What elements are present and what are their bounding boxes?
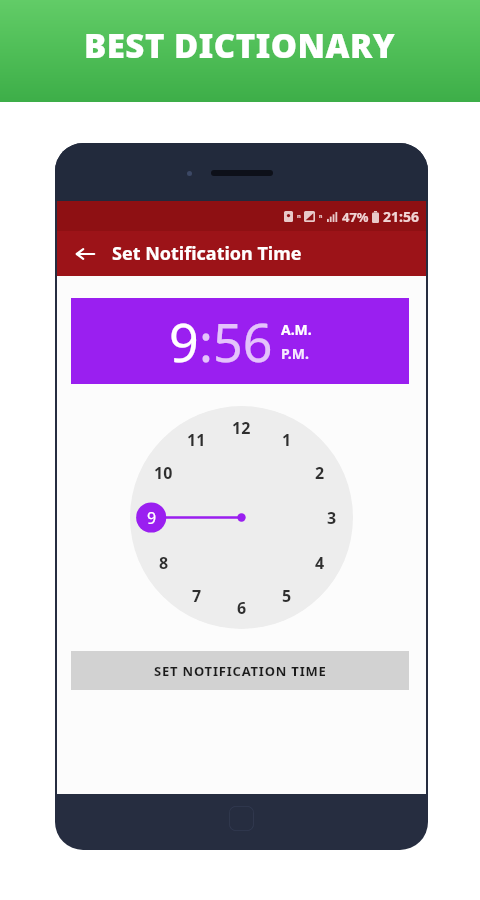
staticText: P.M. xyxy=(281,344,309,363)
staticText: 9 xyxy=(147,507,157,529)
staticText: 10 xyxy=(154,462,173,484)
staticText: :56 xyxy=(199,306,273,377)
staticText: 2 xyxy=(315,462,325,484)
staticText: 5 xyxy=(282,585,292,607)
button[interactable]: Clock face, 9 o'clock xyxy=(130,406,353,629)
staticText: 21:56 xyxy=(383,207,419,226)
staticText: 47% xyxy=(342,208,369,226)
staticText: 4 xyxy=(315,552,325,574)
staticText: 7 xyxy=(192,585,202,607)
staticText: SET NOTIFICATION TIME xyxy=(154,662,327,680)
button[interactable]: SET NOTIFICATION TIME xyxy=(71,651,409,690)
staticText: 3 xyxy=(327,507,337,529)
staticText: Set Notification Time xyxy=(112,241,302,266)
staticText: 11 xyxy=(187,429,206,451)
button[interactable]: 9 xyxy=(71,298,409,384)
staticText: ⁿ xyxy=(297,211,301,223)
staticText: 12 xyxy=(232,417,251,439)
staticText: 6 xyxy=(237,597,247,619)
staticText: A.M. xyxy=(281,320,312,339)
staticText: 9 xyxy=(169,306,199,377)
staticText: ⁿ xyxy=(319,211,323,222)
staticText: BEST DICTIONARY xyxy=(84,23,396,68)
button[interactable]: Back xyxy=(57,231,112,276)
staticText: 1 xyxy=(282,429,292,451)
staticText: 8 xyxy=(159,552,169,574)
